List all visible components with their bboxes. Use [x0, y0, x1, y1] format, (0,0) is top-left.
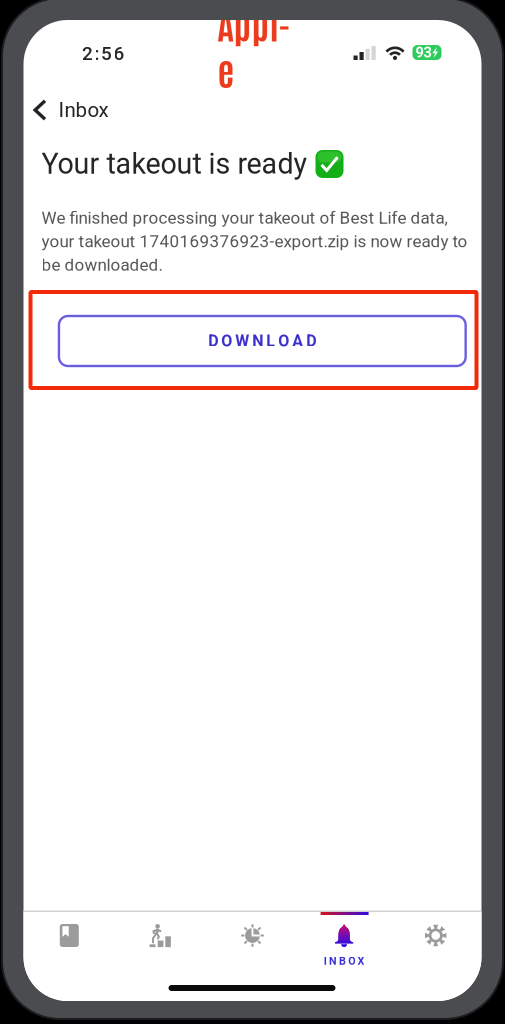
button[interactable]: Inbox [32, 90, 152, 130]
staticText: D [306, 332, 316, 350]
staticText: N [329, 955, 337, 967]
staticText: X [357, 955, 364, 967]
button[interactable]: Brightness [207, 912, 298, 1001]
staticText: Your takeout is ready [41, 147, 307, 181]
button[interactable]: Settings [390, 912, 481, 1001]
button[interactable]: D [59, 316, 466, 366]
staticText: O [278, 332, 289, 350]
staticText: 5 [101, 42, 112, 64]
staticText: O [221, 332, 232, 350]
button[interactable]: Activity [115, 912, 207, 1001]
staticText: Apple [218, 0, 291, 93]
staticText: A [292, 332, 303, 350]
staticText: 93 [416, 44, 432, 61]
staticText: D [208, 332, 218, 350]
button[interactable]: Library [23, 912, 115, 1001]
staticText: L [266, 332, 275, 350]
staticText: O [348, 955, 355, 967]
staticText: 2 [82, 42, 93, 64]
staticText: I [324, 955, 327, 967]
staticText: We finished processing your takeout of B… [41, 208, 467, 275]
staticText: : [94, 42, 99, 64]
staticText: Inbox [58, 98, 108, 122]
staticText: B [339, 955, 346, 967]
staticText: N [252, 332, 263, 350]
button[interactable]: Inbox [298, 912, 390, 1001]
staticText: W [235, 332, 249, 350]
staticText: 6 [113, 42, 124, 64]
